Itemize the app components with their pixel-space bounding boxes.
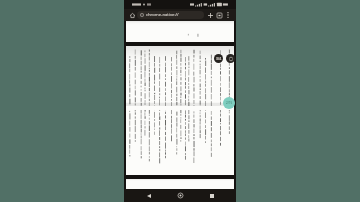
button[interactable]: Scroll position — [223, 97, 235, 109]
button[interactable]: Back — [142, 189, 156, 202]
button[interactable]: Home — [173, 189, 187, 202]
button[interactable]: Zoom level — [214, 54, 223, 63]
button[interactable]: Recent apps — [205, 189, 219, 202]
staticText: 2/15 — [226, 101, 233, 105]
staticText: 3/4 — [216, 56, 222, 61]
button[interactable]: Switch tabs — [215, 11, 224, 20]
button[interactable]: New tab — [206, 11, 215, 20]
button[interactable]: More options — [224, 11, 232, 19]
button[interactable]: Home — [128, 11, 137, 20]
button[interactable]: chrome-native:// — [137, 11, 204, 19]
button[interactable]: Fit page — [226, 54, 235, 63]
staticText: chrome-native:// — [146, 12, 179, 18]
